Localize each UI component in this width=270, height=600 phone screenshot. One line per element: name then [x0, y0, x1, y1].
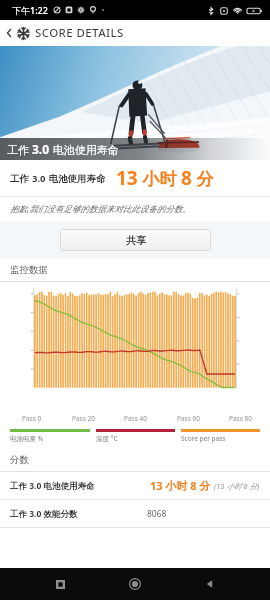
staticText: 工作 3.0 效能分数 — [10, 508, 78, 520]
staticText: Pass 60 — [177, 414, 200, 423]
button[interactable]: Back — [3, 26, 17, 40]
button[interactable]: Recent apps — [45, 569, 75, 599]
button[interactable]: 工作 — [0, 46, 270, 160]
staticText: SCORE DETAILS — [35, 25, 124, 41]
staticText: Pass 20 — [72, 414, 95, 423]
button[interactable]: 共享 — [60, 229, 211, 251]
staticText: 共享 — [126, 234, 146, 247]
button[interactable]: Home — [120, 569, 150, 599]
staticText: Pass 80 — [229, 414, 252, 423]
staticText: Pass 0 — [22, 414, 42, 423]
staticText: 分数 — [10, 454, 29, 466]
staticText: 8 — [181, 165, 192, 191]
staticText: 监控数据 — [10, 264, 48, 276]
staticText: 工作 — [10, 172, 32, 185]
staticText: (13 小时 8 分) — [214, 481, 260, 491]
staticText: Pass 40 — [124, 414, 147, 423]
staticText: 3.0 — [32, 141, 50, 157]
staticText: 13 — [116, 165, 138, 191]
staticText: 温度 °C — [96, 434, 118, 443]
staticText: 小时 — [138, 167, 181, 190]
staticText: 8068 — [147, 508, 167, 520]
staticText: 电池使用寿命 — [46, 172, 106, 185]
staticText: 13 小时 8 分 — [150, 478, 211, 493]
staticText: 工作 3.0 电池使用寿命 — [10, 480, 95, 492]
button[interactable]: 工作 3.0 电池使用寿命 — [0, 472, 270, 499]
staticText: Score per pass — [181, 434, 226, 443]
staticText: 工作 — [7, 142, 32, 157]
staticText: 电池使用寿命 — [50, 142, 119, 157]
button[interactable]: Back — [195, 569, 225, 599]
staticText: 分 — [192, 167, 214, 190]
staticText: 电池电量 % — [10, 434, 44, 443]
button[interactable]: 工作 3.0 效能分数 — [0, 500, 270, 527]
staticText: 抱歉,我们没有足够的数据来对比此设备的分数。 — [10, 203, 191, 215]
staticText: 下午1:22 — [12, 4, 48, 16]
staticText: 3.0 — [32, 172, 46, 185]
